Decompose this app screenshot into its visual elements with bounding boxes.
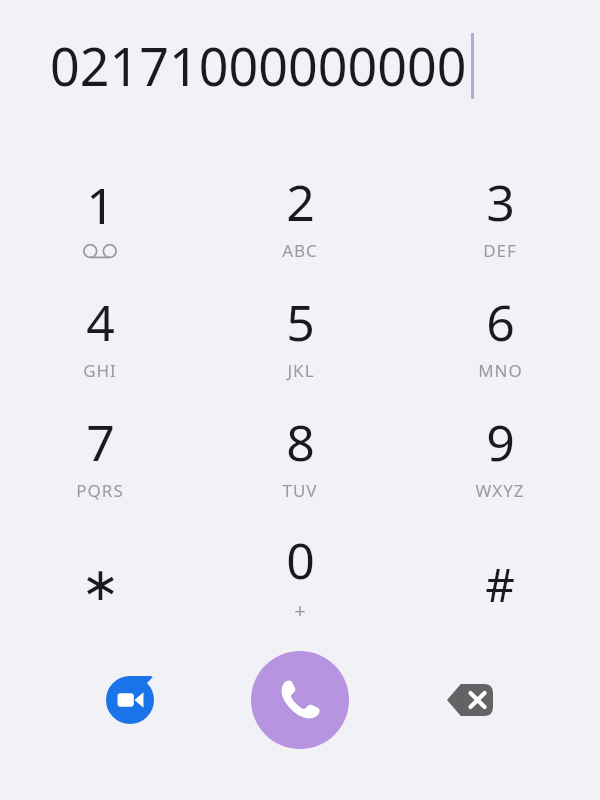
button[interactable]: 7 bbox=[0, 400, 200, 520]
staticText: 5 bbox=[286, 288, 315, 356]
staticText: MNO bbox=[478, 359, 523, 382]
button[interactable]: ∗ bbox=[0, 520, 200, 640]
staticText: GHI bbox=[83, 359, 117, 382]
staticText: 6 bbox=[486, 288, 515, 356]
staticText: ABC bbox=[282, 239, 318, 262]
staticText: JKL bbox=[287, 359, 315, 382]
button[interactable]: 1 bbox=[0, 160, 200, 280]
staticText: # bbox=[485, 553, 515, 616]
staticText: 7 bbox=[86, 408, 115, 476]
button[interactable]: 3 bbox=[400, 160, 600, 280]
staticText: 1 bbox=[86, 171, 115, 239]
staticText: DEF bbox=[483, 239, 517, 262]
staticText: WXYZ bbox=[475, 479, 525, 502]
staticText: 0 bbox=[286, 526, 315, 594]
button[interactable]: 2 bbox=[200, 160, 400, 280]
button[interactable]: 9 bbox=[400, 400, 600, 520]
staticText: 9 bbox=[486, 408, 515, 476]
staticText: 02171000000000 bbox=[50, 30, 467, 101]
staticText: + bbox=[294, 597, 307, 624]
button[interactable]: 4 bbox=[0, 280, 200, 400]
staticText: PQRS bbox=[76, 479, 124, 502]
staticText: TUV bbox=[282, 479, 318, 502]
staticText: 8 bbox=[286, 408, 315, 476]
staticText: 4 bbox=[86, 288, 115, 356]
button[interactable]: 0 bbox=[200, 520, 400, 640]
button[interactable]: 6 bbox=[400, 280, 600, 400]
button[interactable]: # bbox=[400, 520, 600, 640]
staticText: ∗ bbox=[81, 557, 120, 611]
staticText: 2 bbox=[286, 168, 315, 236]
button[interactable]: Call bbox=[251, 651, 349, 749]
button[interactable]: 8 bbox=[200, 400, 400, 520]
staticText: 3 bbox=[486, 168, 515, 236]
button[interactable]: Backspace bbox=[438, 668, 502, 732]
button[interactable]: Video call bbox=[98, 668, 162, 732]
button[interactable]: 5 bbox=[200, 280, 400, 400]
